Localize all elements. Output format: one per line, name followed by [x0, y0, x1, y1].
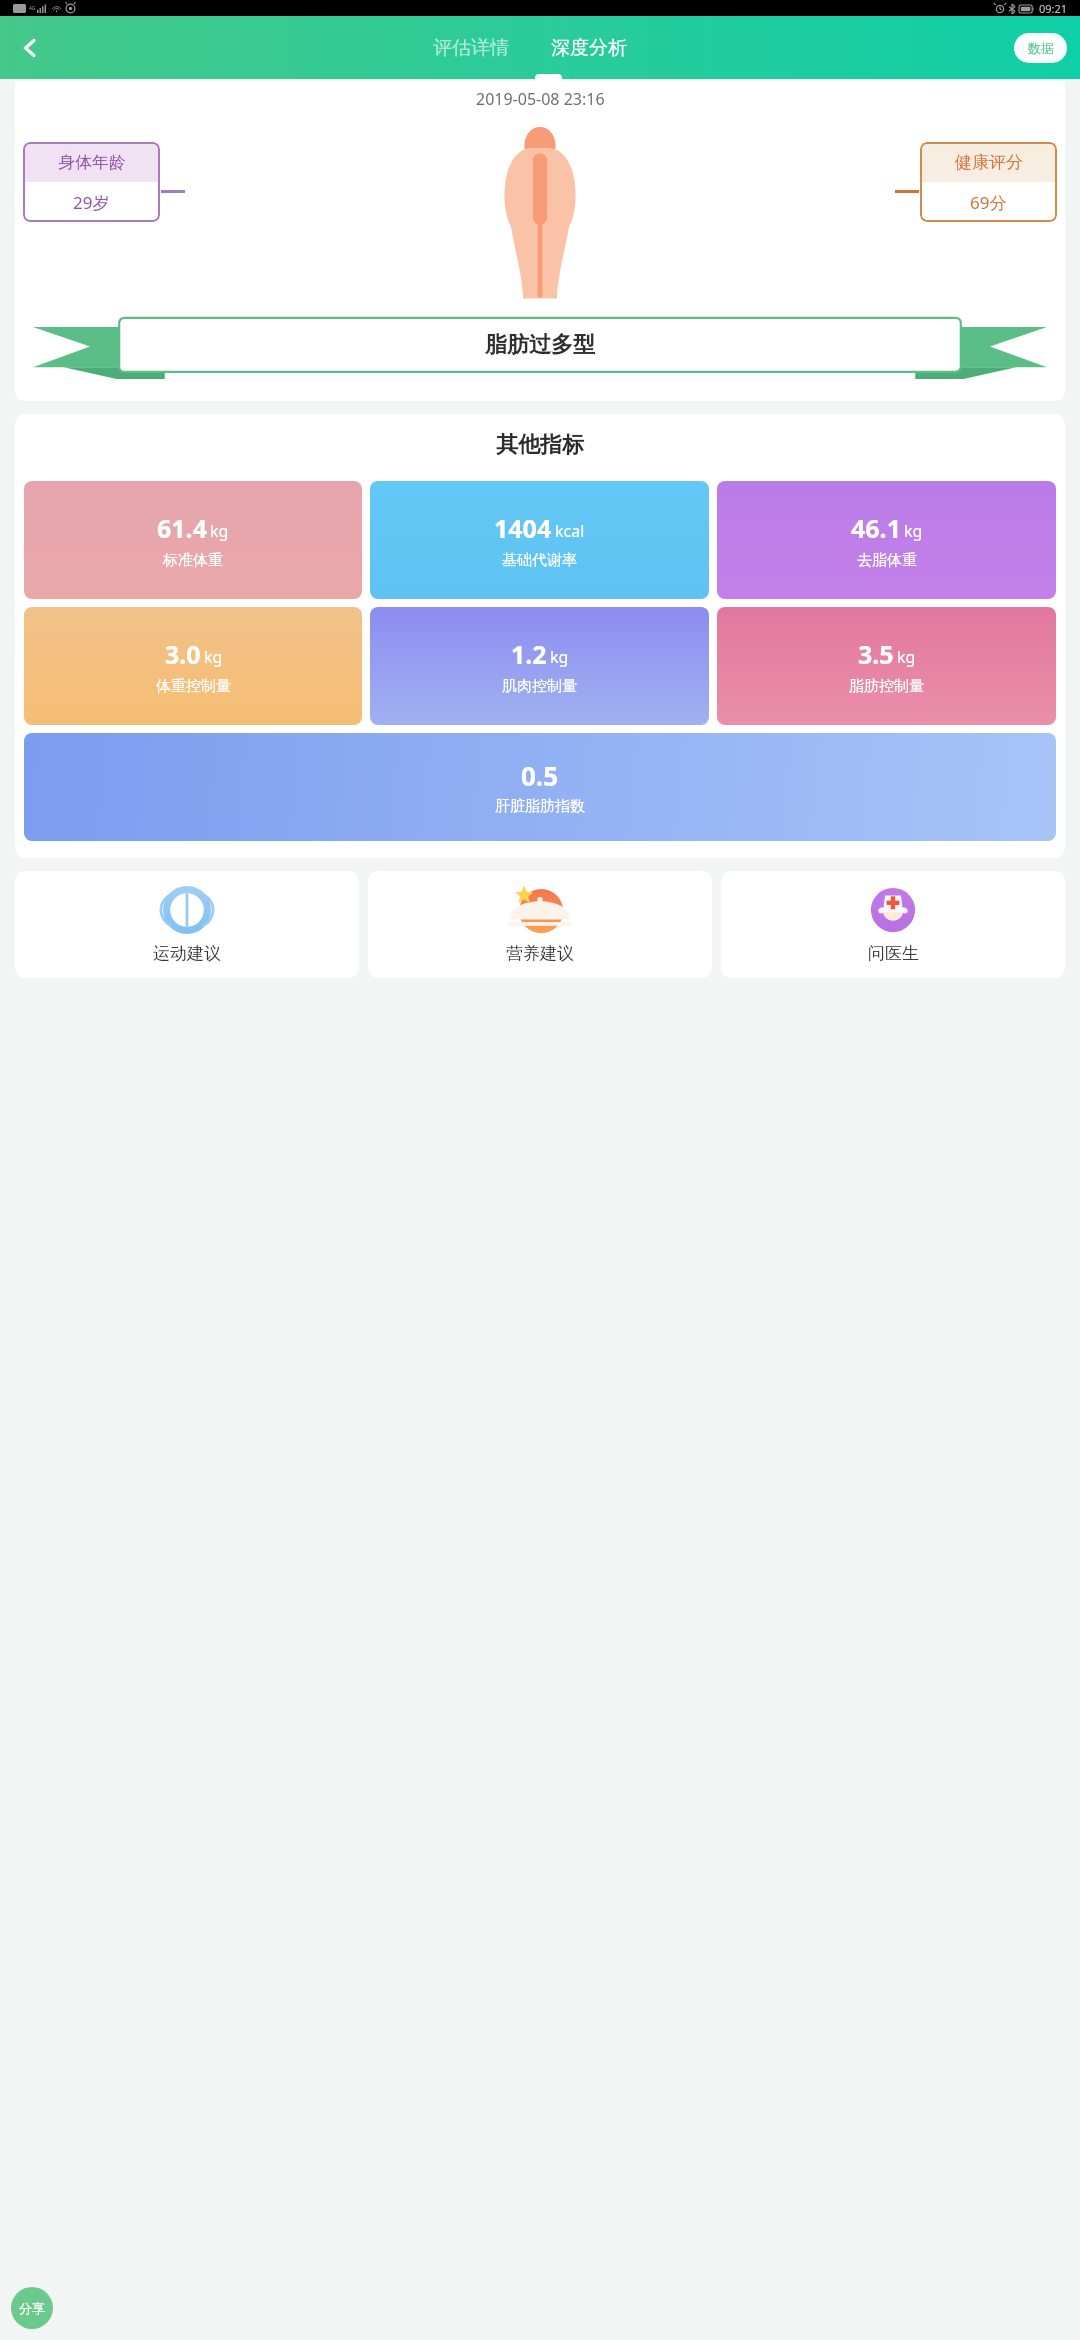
button[interactable]: 3.5 [717, 607, 1056, 725]
staticText: kg [904, 520, 923, 542]
staticText: 肝脏脂肪指数 [495, 797, 585, 816]
staticText: 评估详情 [433, 36, 509, 60]
button[interactable]: 深度分析 [539, 30, 639, 66]
staticText: 肌肉控制量 [502, 677, 577, 696]
staticText: 分享 [19, 2300, 45, 2316]
staticText: 标准体重 [163, 551, 223, 570]
button[interactable]: Back [8, 26, 52, 70]
staticText: 身体年龄 [58, 152, 126, 173]
staticText: 29岁 [73, 191, 110, 214]
button[interactable]: 营养建议 [368, 871, 712, 978]
staticText: 基础代谢率 [502, 551, 577, 570]
staticText: 3.0 [165, 637, 201, 671]
staticText: 46.1 [851, 511, 901, 545]
button[interactable]: 健康评分 [920, 142, 1057, 222]
button[interactable]: 评估详情 [421, 30, 521, 66]
button[interactable]: 身体年龄 [23, 142, 160, 222]
button[interactable]: 1.2 [370, 607, 709, 725]
staticText: 69分 [970, 191, 1007, 214]
staticText: 1404 [494, 511, 552, 545]
staticText: 去脂体重 [857, 551, 917, 570]
staticText: 脂肪过多型 [485, 331, 595, 359]
staticText: 61.4 [157, 511, 207, 545]
staticText: 运动建议 [153, 943, 221, 964]
staticText: 2019-05-08 23:16 [476, 88, 605, 110]
staticText: 0.5 [521, 758, 559, 793]
button[interactable]: 分享 [11, 2287, 53, 2329]
staticText: 健康评分 [955, 152, 1023, 173]
button[interactable]: 1404 [370, 481, 709, 599]
staticText: 深度分析 [551, 36, 627, 60]
staticText: 09:21 [1039, 1, 1068, 16]
staticText: kg [204, 646, 223, 668]
button[interactable]: 0.5 [24, 733, 1056, 841]
staticText: 其他指标 [496, 431, 584, 459]
staticText: kg [550, 646, 569, 668]
staticText: kg [897, 646, 916, 668]
button[interactable]: 问医生 [721, 871, 1065, 978]
button[interactable]: 61.4 [24, 481, 362, 599]
staticText: kg [210, 520, 229, 542]
staticText: 体重控制量 [156, 677, 231, 696]
staticText: 4G [29, 5, 36, 12]
staticText: 数据 [1028, 40, 1054, 56]
staticText: 1.2 [511, 637, 547, 671]
staticText: kcal [555, 520, 585, 542]
staticText: 问医生 [868, 943, 919, 964]
staticText: 营养建议 [506, 943, 574, 964]
button[interactable]: 数据 [1014, 33, 1067, 63]
button[interactable]: 3.0 [24, 607, 362, 725]
button[interactable]: 运动建议 [15, 871, 359, 978]
staticText: 3.5 [858, 637, 894, 671]
staticText: 脂肪控制量 [849, 677, 924, 696]
button[interactable]: 46.1 [717, 481, 1056, 599]
